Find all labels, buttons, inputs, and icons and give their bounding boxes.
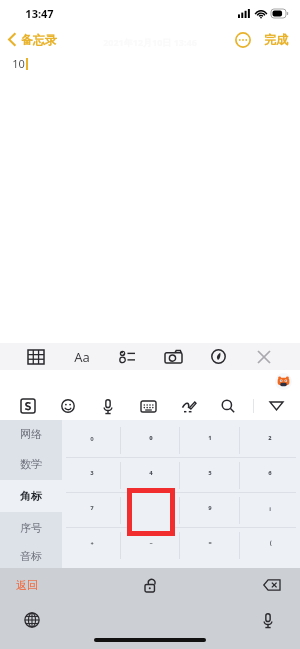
button[interactable]: 10 [0, 52, 300, 343]
staticText: 网络 [20, 427, 42, 441]
staticText: ⁼ [208, 539, 212, 551]
button[interactable]: 完成 [262, 30, 290, 49]
button[interactable]: Switch language [18, 606, 46, 634]
staticText: 音标 [20, 549, 42, 563]
staticText: 完成 [264, 32, 288, 47]
button[interactable]: Keyboard [132, 392, 164, 420]
button[interactable]: ⁽ [240, 528, 300, 562]
staticText: 返回 [16, 578, 38, 592]
button[interactable]: Voice input [254, 606, 282, 634]
staticText: 10 [12, 56, 25, 71]
button[interactable]: ² [240, 423, 300, 457]
button[interactable]: ⁸ [121, 493, 180, 527]
button[interactable]: ⁵ [180, 458, 240, 492]
staticText: ⁷ [90, 504, 94, 516]
staticText: 序号 [20, 521, 42, 535]
staticText: ⁻ [149, 539, 153, 551]
button[interactable]: 角标 [0, 480, 62, 512]
staticText: ⁴ [149, 469, 153, 481]
staticText: ⁽ [269, 539, 272, 551]
button[interactable]: ⁷ [62, 493, 121, 527]
staticText: ⁹ [208, 504, 212, 516]
button[interactable]: Markup [201, 343, 235, 370]
staticText: ² [268, 434, 272, 446]
button[interactable]: Backspace [256, 570, 286, 600]
button[interactable]: Text format [65, 343, 99, 370]
staticText: 13:47 [25, 6, 54, 21]
staticText: ³ [90, 469, 94, 481]
button[interactable]: 返回 [10, 575, 44, 595]
button[interactable]: 网络 [0, 420, 62, 448]
staticText: ⁰ [149, 434, 153, 446]
staticText: 角标 [20, 489, 42, 503]
button[interactable]: Camera [156, 343, 190, 370]
staticText: ⁺ [90, 539, 94, 551]
staticText: ⁱ [269, 504, 271, 516]
button[interactable]: º [62, 423, 121, 457]
button[interactable]: 音标 [0, 544, 62, 568]
button[interactable]: ⁱ [240, 493, 300, 527]
staticText: º [90, 434, 94, 446]
button[interactable]: ⁰ [121, 423, 180, 457]
button[interactable]: ⁹ [180, 493, 240, 527]
staticText: Aa [74, 348, 90, 366]
staticText: ⁶ [268, 469, 272, 481]
button[interactable]: Search [212, 392, 244, 420]
button[interactable]: Checklist [110, 343, 144, 370]
staticText: 数学 [20, 457, 42, 471]
button[interactable]: Collapse toolbar [252, 392, 300, 420]
staticText: ¹ [208, 434, 212, 446]
button[interactable]: Handwriting [172, 392, 204, 420]
button[interactable]: ⁶ [240, 458, 300, 492]
button[interactable]: Lock symbols [135, 570, 165, 600]
button[interactable]: ⁼ [180, 528, 240, 562]
button[interactable]: ³ [62, 458, 121, 492]
button[interactable]: ⁻ [121, 528, 180, 562]
button[interactable]: ¹ [180, 423, 240, 457]
button[interactable]: Close keyboard [247, 343, 281, 370]
button[interactable]: 备忘录 [0, 30, 65, 49]
button[interactable]: More options [234, 31, 252, 49]
button[interactable]: 序号 [0, 512, 62, 544]
button[interactable]: Sogou assistant [275, 373, 292, 390]
staticText: ⁵ [208, 469, 212, 481]
staticText: 备忘录 [21, 32, 57, 47]
button[interactable]: 数学 [0, 448, 62, 480]
button[interactable]: Voice input [92, 392, 124, 420]
button[interactable]: Emoji [52, 392, 84, 420]
button[interactable]: Table [19, 343, 53, 370]
button[interactable]: Sogou logo [12, 392, 44, 420]
button[interactable]: ⁺ [62, 528, 121, 562]
button[interactable]: ⁴ [121, 458, 180, 492]
